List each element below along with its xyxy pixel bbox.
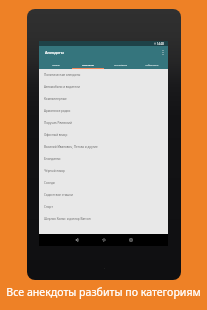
staticText: Политические анекдоты — [44, 73, 81, 77]
staticText: Анекдоты — [45, 50, 64, 55]
button[interactable]: Компьютерные — [39, 93, 168, 105]
staticText: Садистские стишки — [44, 193, 73, 197]
staticText: Все анекдоты разбиты по категориям — [0, 285, 207, 299]
staticText: Новые — [52, 63, 60, 66]
button[interactable]: Поручик Ржевский — [39, 117, 168, 129]
button[interactable]: Избранные — [136, 59, 168, 69]
staticText: Компьютерные — [44, 97, 67, 101]
button[interactable]: Соседи — [39, 177, 168, 189]
button[interactable]: Блондинки — [39, 153, 168, 165]
button[interactable]: Home — [96, 234, 112, 246]
button[interactable]: Автомобили и водители — [39, 81, 168, 93]
staticText: Шерлок Холмс и доктор Ватсон — [44, 217, 91, 221]
button[interactable]: Офисный юмор — [39, 129, 168, 141]
button[interactable]: Садистские стишки — [39, 189, 168, 201]
staticText: Армянское радио — [44, 109, 71, 113]
staticText: Блондинки — [44, 157, 61, 161]
button[interactable]: Back — [69, 234, 85, 246]
staticText: Офисный юмор — [44, 133, 68, 137]
button[interactable]: Recents — [123, 234, 139, 246]
staticText: Избранные — [145, 63, 159, 66]
staticText: Категории — [82, 63, 95, 66]
button[interactable]: Категории — [72, 59, 104, 69]
staticText: Случайные — [114, 63, 127, 66]
button[interactable]: Армянское радио — [39, 105, 168, 117]
button[interactable]: Чёрный юмор — [39, 165, 168, 177]
staticText: Автомобили и водители — [44, 85, 80, 89]
button[interactable]: Шерлок Холмс и доктор Ватсон — [39, 213, 168, 225]
staticText: 14:28 — [157, 42, 164, 46]
staticText: Поручик Ржевский — [44, 121, 72, 125]
staticText: Соседи — [44, 181, 55, 185]
staticText: Чёрный юмор — [44, 169, 65, 173]
button[interactable]: Спорт — [39, 201, 168, 213]
staticText: Спорт — [44, 205, 53, 209]
button[interactable]: Случайные — [104, 59, 136, 69]
button[interactable]: Василий Иванович, Петька и другие — [39, 141, 168, 153]
button[interactable]: More options — [157, 46, 168, 59]
button[interactable]: Новые — [39, 59, 72, 69]
button[interactable]: Политические анекдоты — [39, 69, 168, 81]
staticText: Василий Иванович, Петька и другие — [44, 145, 98, 149]
